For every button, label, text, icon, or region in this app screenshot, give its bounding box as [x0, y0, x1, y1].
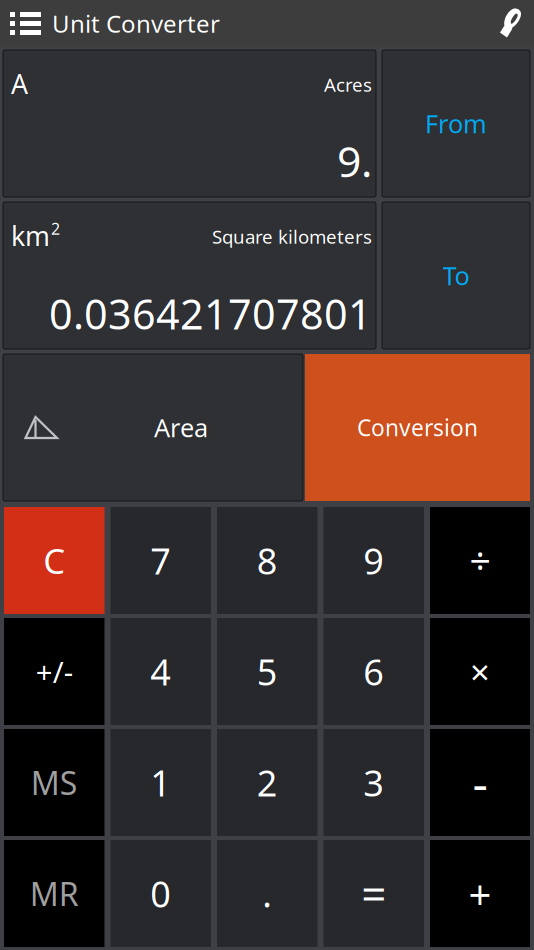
- staticText: MS: [31, 761, 78, 804]
- button[interactable]: MR: [4, 840, 104, 947]
- staticText: km: [11, 218, 50, 253]
- button[interactable]: Highlighter: [487, 0, 534, 49]
- button[interactable]: =: [323, 840, 424, 947]
- button[interactable]: Area: [3, 354, 303, 501]
- staticText: 7: [150, 537, 171, 584]
- button[interactable]: 1: [110, 729, 211, 836]
- staticText: MR: [30, 872, 79, 915]
- button[interactable]: .: [217, 840, 317, 947]
- staticText: ×: [470, 648, 490, 694]
- staticText: 0.036421707801: [49, 286, 372, 341]
- staticText: C: [43, 537, 65, 583]
- staticText: Unit Converter: [52, 8, 220, 39]
- button[interactable]: MS: [4, 729, 104, 836]
- staticText: +: [468, 867, 491, 920]
- button[interactable]: 0: [110, 840, 211, 947]
- button[interactable]: 6: [323, 618, 424, 725]
- staticText: ÷: [469, 536, 490, 585]
- staticText: 2: [51, 218, 60, 239]
- staticText: Square kilometers: [212, 224, 372, 249]
- staticText: Conversion: [357, 412, 478, 442]
- button[interactable]: 2: [217, 729, 317, 836]
- staticText: 4: [150, 648, 171, 695]
- staticText: 9: [363, 537, 384, 584]
- staticText: .: [262, 870, 272, 917]
- button[interactable]: 5: [217, 618, 317, 725]
- staticText: A: [11, 66, 28, 101]
- staticText: 5: [257, 648, 278, 695]
- button[interactable]: 4: [110, 618, 211, 725]
- staticText: 1: [150, 759, 171, 806]
- staticText: Area: [154, 411, 208, 444]
- staticText: 6: [363, 648, 384, 695]
- staticText: 9.: [337, 132, 372, 189]
- button[interactable]: 8: [217, 507, 317, 614]
- staticText: From: [425, 107, 487, 140]
- button[interactable]: +/-: [4, 618, 104, 725]
- button[interactable]: 9: [323, 507, 424, 614]
- button[interactable]: -: [430, 729, 530, 836]
- button[interactable]: +: [430, 840, 530, 947]
- staticText: -: [472, 751, 487, 814]
- button[interactable]: 7: [110, 507, 211, 614]
- button[interactable]: To: [382, 202, 530, 349]
- staticText: Acres: [324, 72, 372, 97]
- staticText: 0: [150, 870, 171, 917]
- staticText: 3: [363, 759, 384, 806]
- staticText: To: [442, 259, 469, 292]
- button[interactable]: C: [4, 507, 104, 614]
- button[interactable]: ×: [430, 618, 530, 725]
- staticText: =: [361, 864, 386, 923]
- button[interactable]: Conversion: [305, 354, 530, 501]
- button[interactable]: ÷: [430, 507, 530, 614]
- button[interactable]: 3: [323, 729, 424, 836]
- staticText: 8: [257, 537, 278, 584]
- staticText: 2: [257, 759, 278, 806]
- button[interactable]: Menu: [0, 0, 52, 47]
- button[interactable]: From: [382, 50, 530, 197]
- staticText: +/-: [36, 652, 73, 691]
